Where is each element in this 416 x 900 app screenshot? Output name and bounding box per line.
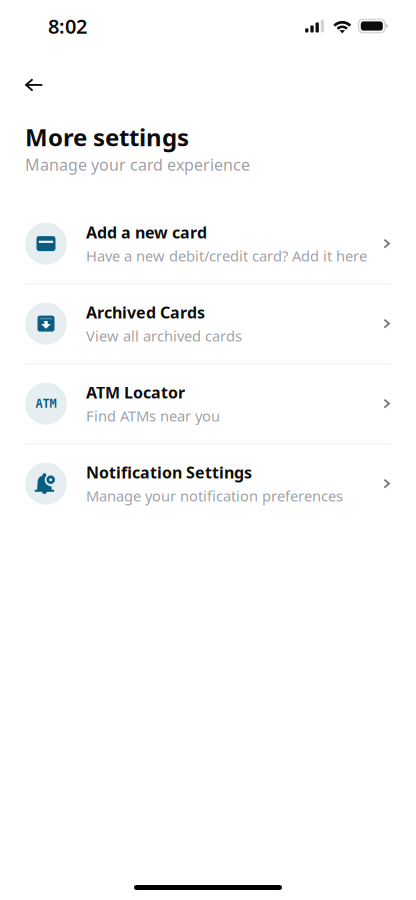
staticText: Archived Cards [86, 302, 205, 323]
staticText: ATM Locator [86, 382, 185, 403]
staticText: Manage your card experience [25, 154, 250, 175]
staticText: Manage your notification preferences [86, 486, 343, 505]
staticText: Add a new card [86, 222, 207, 243]
button[interactable]: Add a new card [0, 204, 416, 283]
staticText: Notification Settings [86, 462, 252, 483]
staticText: View all archived cards [86, 326, 242, 345]
button[interactable]: Back [17, 70, 51, 100]
staticText: 8:02 [48, 13, 87, 39]
staticText: Have a new debit/credit card? Add it her… [86, 246, 367, 265]
staticText: More settings [25, 121, 189, 153]
button[interactable]: Archived Cards [0, 284, 416, 363]
staticText: ATM [35, 397, 56, 410]
button[interactable]: ATM [0, 364, 416, 443]
staticText: Find ATMs near you [86, 406, 220, 425]
button[interactable]: Notification Settings [0, 444, 416, 523]
